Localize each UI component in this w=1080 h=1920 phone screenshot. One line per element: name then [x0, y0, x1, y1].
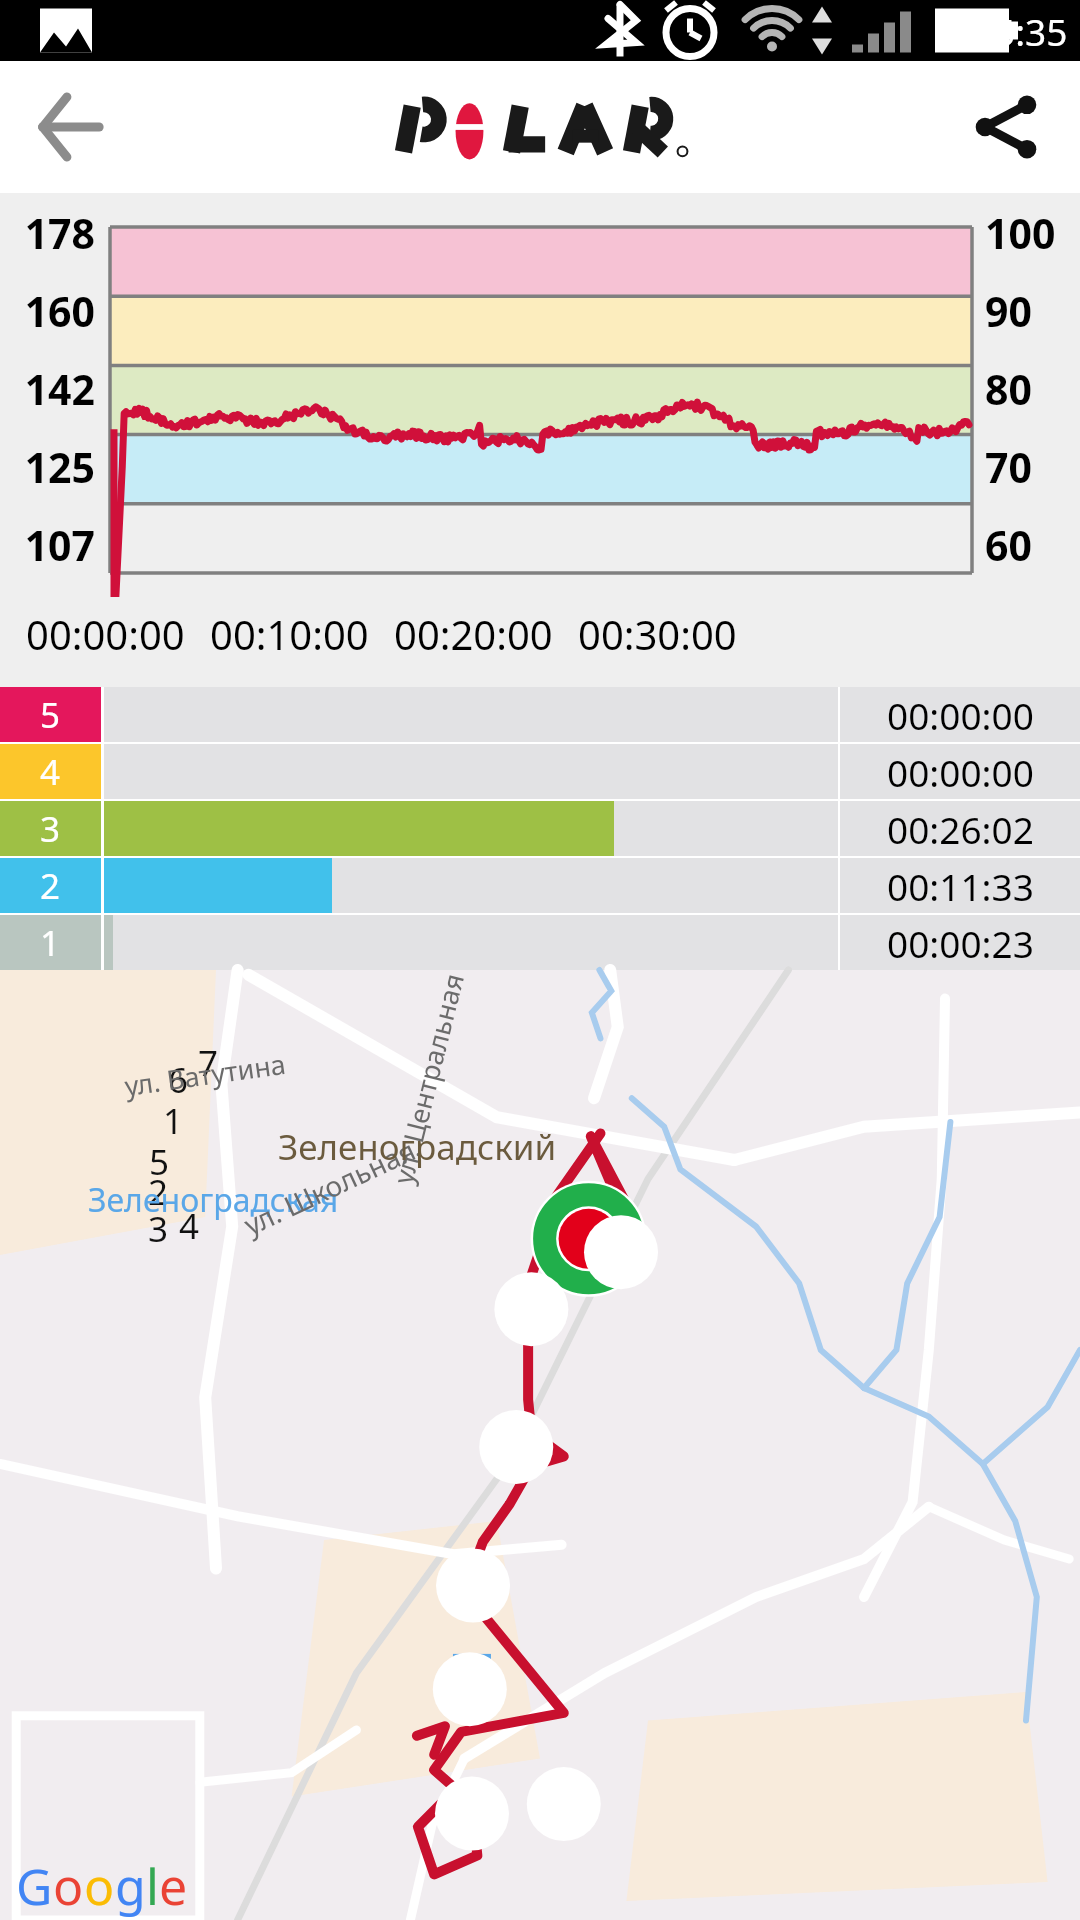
staticText: 125 — [0, 439, 95, 495]
staticText: 00:00:00 — [887, 747, 1034, 797]
staticText: l — [146, 1852, 159, 1920]
button[interactable]: Share — [956, 77, 1056, 177]
staticText: 100 — [985, 205, 1080, 261]
staticText: G — [16, 1852, 53, 1920]
staticText: 5:35 — [994, 6, 1068, 56]
staticText: Зеленоградский — [278, 1123, 557, 1171]
staticText: 7 — [198, 1039, 219, 1087]
staticText: 5 — [149, 1138, 170, 1186]
staticText: 90 — [985, 283, 1080, 339]
staticText: g — [115, 1852, 146, 1920]
button[interactable]: 4 — [0, 744, 1080, 799]
button[interactable]: 5 — [0, 687, 1080, 742]
staticText: 4 — [40, 748, 61, 796]
staticText: 00:30:00 — [578, 607, 762, 661]
staticText: 00:20:00 — [394, 607, 578, 661]
staticText: 142 — [0, 361, 95, 417]
staticText: ул. Центральная — [384, 969, 472, 1188]
staticText: 5 — [40, 691, 61, 739]
staticText: 4 — [179, 1202, 200, 1250]
staticText: 00:00:00 — [887, 690, 1034, 740]
staticText: 00:26:02 — [887, 804, 1034, 854]
staticText: 6 — [168, 1056, 189, 1104]
button[interactable]: 2 — [0, 858, 1080, 913]
staticText: 60 — [985, 517, 1080, 573]
button[interactable]: Back — [20, 77, 120, 177]
staticText: 2 — [40, 862, 61, 910]
staticText: 00:10:00 — [210, 607, 394, 661]
staticText: 70 — [985, 439, 1080, 495]
staticText: 3 — [40, 805, 61, 853]
staticText: o — [84, 1852, 115, 1920]
staticText: e — [159, 1852, 188, 1920]
staticText: o — [53, 1852, 84, 1920]
staticText: 3 — [148, 1205, 169, 1253]
staticText: ул. Школьная — [238, 1131, 421, 1243]
staticText: 178 — [0, 205, 95, 261]
staticText: 2 — [148, 1168, 169, 1216]
staticText: 160 — [0, 283, 95, 339]
staticText: 00:00:23 — [887, 918, 1034, 968]
staticText: 1 — [40, 919, 61, 967]
staticText: Зеленоградская — [88, 1178, 339, 1222]
staticText: 80 — [985, 361, 1080, 417]
button[interactable]: 3 — [0, 801, 1080, 856]
staticText: 00:11:33 — [887, 861, 1034, 911]
staticText: 1 — [163, 1097, 184, 1145]
staticText: 107 — [0, 517, 95, 573]
staticText: ул. Ватутина — [122, 1045, 288, 1104]
button[interactable]: 1 — [0, 915, 1080, 970]
staticText: 00:00:00 — [26, 607, 210, 661]
button[interactable]: Route map — [0, 970, 1080, 1920]
